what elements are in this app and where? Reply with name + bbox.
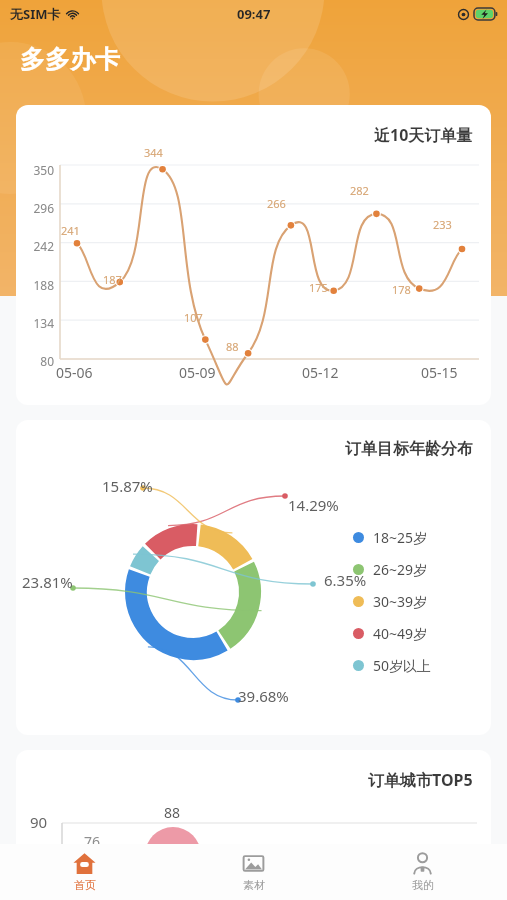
button[interactable]: 近10天订单量 bbox=[16, 105, 491, 405]
staticText: 26~29岁 bbox=[373, 560, 428, 579]
staticText: 我的 bbox=[412, 878, 434, 892]
staticText: 266 bbox=[267, 196, 286, 211]
button[interactable]: 30~39岁 bbox=[353, 585, 428, 617]
staticText: 241 bbox=[61, 223, 80, 238]
staticText: 296 bbox=[16, 200, 54, 216]
staticText: 09:47 bbox=[237, 5, 271, 23]
staticText: 80 bbox=[16, 353, 54, 369]
button[interactable]: 首页 bbox=[0, 844, 169, 900]
staticText: 30~39岁 bbox=[373, 592, 428, 611]
staticText: 40~49岁 bbox=[373, 624, 428, 643]
button[interactable]: 我的 bbox=[338, 844, 507, 900]
staticText: 88 bbox=[226, 339, 239, 354]
staticText: 05-09 bbox=[179, 363, 216, 382]
staticText: 242 bbox=[16, 238, 54, 254]
staticText: 15.87% bbox=[102, 476, 153, 496]
staticText: 6.35% bbox=[324, 570, 367, 590]
staticText: 188 bbox=[16, 277, 54, 293]
staticText: 233 bbox=[433, 217, 452, 232]
staticText: 344 bbox=[144, 145, 163, 160]
staticText: 175 bbox=[309, 280, 328, 295]
staticText: 50岁以上 bbox=[373, 656, 432, 675]
staticText: 首页 bbox=[74, 878, 96, 892]
staticText: 近10天订单量 bbox=[374, 124, 473, 146]
button[interactable]: 18~25岁 bbox=[353, 521, 428, 553]
staticText: 订单目标年龄分布 bbox=[345, 439, 473, 459]
staticText: 178 bbox=[392, 282, 411, 297]
button[interactable]: 26~29岁 bbox=[353, 553, 428, 585]
staticText: 39.68% bbox=[238, 686, 289, 706]
staticText: 18~25岁 bbox=[373, 528, 428, 547]
staticText: 05-12 bbox=[302, 363, 339, 382]
staticText: 23.81% bbox=[22, 572, 73, 592]
button[interactable]: 订单目标年龄分布 bbox=[16, 420, 491, 735]
button[interactable]: 50岁以上 bbox=[353, 649, 432, 681]
staticText: 107 bbox=[184, 310, 203, 325]
staticText: 76 bbox=[84, 832, 101, 851]
staticText: 350 bbox=[16, 162, 54, 178]
staticText: 多多办卡 bbox=[20, 44, 120, 75]
staticText: 05-06 bbox=[56, 363, 93, 382]
staticText: 素材 bbox=[243, 878, 265, 892]
button[interactable]: 40~49岁 bbox=[353, 617, 428, 649]
staticText: 282 bbox=[350, 183, 369, 198]
button[interactable]: 订单城市TOP5 bbox=[16, 750, 491, 900]
staticText: 134 bbox=[16, 315, 54, 331]
staticText: 187 bbox=[103, 272, 122, 287]
staticText: 05-15 bbox=[421, 363, 458, 382]
button[interactable]: 素材 bbox=[169, 844, 338, 900]
staticText: 90 bbox=[30, 812, 48, 832]
staticText: 订单城市TOP5 bbox=[368, 769, 473, 791]
staticText: 88 bbox=[164, 803, 181, 822]
staticText: 14.29% bbox=[288, 495, 339, 515]
staticText: 无SIM卡 bbox=[10, 5, 61, 23]
